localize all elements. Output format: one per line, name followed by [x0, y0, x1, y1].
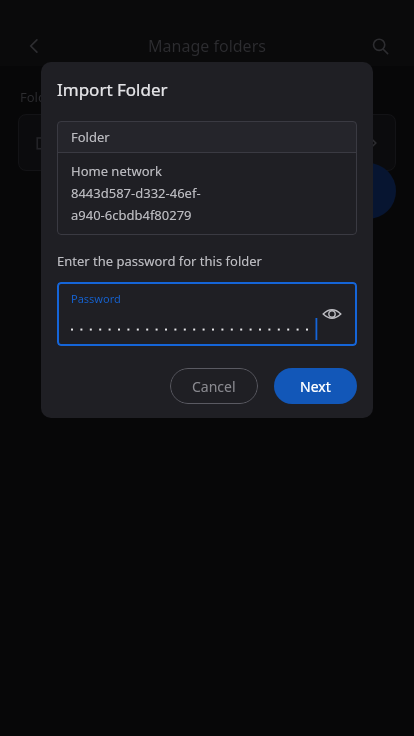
- staticText: Folder: [71, 128, 110, 146]
- button[interactable]: Password: [57, 282, 357, 346]
- staticText: 8443d587-d332-46ef-: [71, 184, 201, 202]
- button[interactable]: Search: [364, 30, 396, 62]
- staticText: Import Folder: [57, 78, 168, 101]
- staticText: a940-6cbdb4f80279: [71, 206, 192, 224]
- button[interactable]: Add folder: [340, 163, 396, 219]
- staticText: Folders: [20, 88, 65, 106]
- button[interactable]: Back: [18, 30, 50, 62]
- button[interactable]: Show password: [315, 297, 349, 331]
- button[interactable]: Next: [274, 368, 357, 404]
- staticText: Next: [300, 377, 331, 396]
- button[interactable]: Cancel: [170, 368, 258, 404]
- staticText: Cancel: [192, 377, 236, 396]
- button[interactable]: [18, 114, 396, 171]
- staticText: Manage folders: [148, 35, 266, 57]
- staticText: Home network: [71, 162, 162, 180]
- staticText: Enter the password for this folder: [57, 252, 262, 270]
- staticText: Password: [71, 291, 121, 306]
